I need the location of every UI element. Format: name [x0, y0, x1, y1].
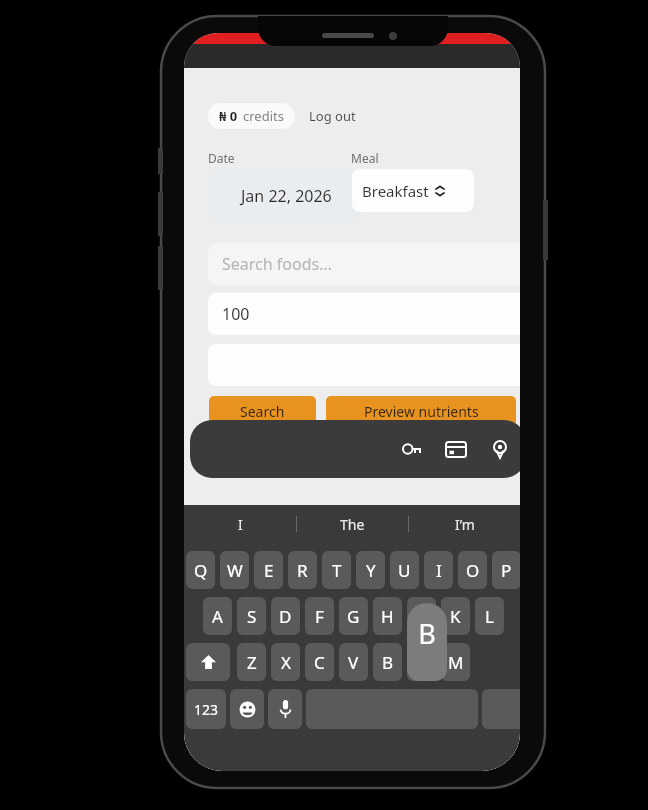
button[interactable]: E: [254, 551, 283, 589]
button[interactable]: Passwords: [390, 427, 434, 471]
button[interactable]: Search foods…: [208, 243, 520, 285]
staticText: D: [279, 605, 292, 628]
button[interactable]: N: [407, 643, 436, 681]
staticText: W: [227, 559, 243, 582]
button[interactable]: H: [373, 597, 402, 635]
staticText: 123: [194, 700, 219, 719]
button[interactable]: C: [305, 643, 334, 681]
button[interactable]: Addresses: [478, 427, 520, 471]
button[interactable]: Log out: [305, 103, 360, 129]
staticText: I’m: [455, 515, 475, 534]
button[interactable]: F: [305, 597, 334, 635]
button[interactable]: I: [184, 505, 296, 543]
button[interactable]: Y: [356, 551, 385, 589]
staticText: J: [419, 605, 424, 628]
staticText: S: [247, 605, 257, 628]
staticText: P: [501, 559, 512, 582]
staticText: Date: [208, 150, 235, 166]
staticText: B: [382, 651, 394, 674]
button[interactable]: B: [373, 643, 402, 681]
staticText: ₦ 0: [219, 107, 238, 125]
button[interactable]: I’m: [409, 505, 520, 543]
staticText: F: [315, 605, 324, 628]
staticText: Z: [247, 651, 257, 674]
staticText: Jan 22, 2026: [241, 185, 332, 207]
staticText: Preview nutrients: [364, 402, 479, 421]
button[interactable]: G: [339, 597, 368, 635]
staticText: T: [332, 559, 342, 582]
button[interactable]: J: [407, 597, 436, 635]
staticText: Q: [194, 559, 208, 582]
staticText: credits: [243, 107, 284, 125]
staticText: H: [381, 605, 394, 628]
button[interactable]: T: [322, 551, 351, 589]
staticText: I: [238, 515, 243, 534]
staticText: X: [281, 651, 291, 674]
staticText: Y: [366, 559, 376, 582]
staticText: Log out: [309, 107, 356, 125]
button[interactable]: Shift: [186, 643, 230, 681]
button[interactable]: K: [441, 597, 470, 635]
button[interactable]: O: [458, 551, 487, 589]
staticText: G: [347, 605, 360, 628]
button[interactable]: Emoji: [230, 689, 264, 729]
button[interactable]: 100: [208, 293, 520, 335]
button[interactable]: R: [288, 551, 317, 589]
button[interactable]: I: [424, 551, 453, 589]
staticText: E: [264, 559, 274, 582]
staticText: 100: [222, 303, 250, 325]
button[interactable]: M: [441, 643, 470, 681]
staticText: I: [436, 559, 442, 582]
staticText: V: [348, 651, 359, 674]
staticText: Breakfast: [362, 181, 429, 201]
staticText: Search: [240, 402, 285, 421]
button[interactable]: U: [390, 551, 419, 589]
button[interactable]: Breakfast: [352, 169, 474, 212]
button[interactable]: The: [297, 505, 408, 543]
staticText: M: [448, 651, 464, 674]
staticText: A: [212, 605, 223, 628]
button[interactable]: W: [220, 551, 249, 589]
staticText: R: [297, 559, 308, 582]
button[interactable]: Payment methods: [434, 427, 478, 471]
button[interactable]: Voice input: [268, 689, 302, 729]
staticText: C: [314, 651, 325, 674]
button[interactable]: ₦ 0: [208, 103, 295, 129]
button[interactable]: D: [271, 597, 300, 635]
button[interactable]: A: [203, 597, 232, 635]
staticText: Meal: [351, 150, 379, 166]
staticText: L: [485, 605, 494, 628]
button[interactable]: 123: [186, 689, 226, 729]
button[interactable]: P: [492, 551, 520, 589]
button[interactable]: Jan 22, 2026: [208, 171, 364, 221]
button[interactable]: Q: [186, 551, 215, 589]
staticText: B: [407, 615, 447, 652]
button[interactable]: Preview nutrients: [326, 396, 516, 426]
staticText: Search foods…: [222, 253, 332, 275]
staticText: K: [450, 605, 461, 628]
staticText: The: [340, 515, 365, 534]
button[interactable]: L: [475, 597, 504, 635]
button[interactable]: Period: [482, 689, 520, 729]
button[interactable]: V: [339, 643, 368, 681]
button[interactable]: Search: [209, 396, 316, 426]
button[interactable]: Z: [237, 643, 266, 681]
staticText: U: [398, 559, 411, 582]
button[interactable]: S: [237, 597, 266, 635]
staticText: O: [466, 559, 480, 582]
button[interactable]: X: [271, 643, 300, 681]
